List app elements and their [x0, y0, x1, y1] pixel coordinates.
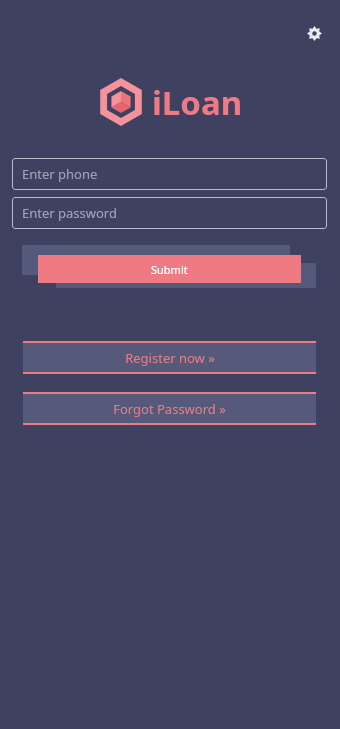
staticText: Forgot Password »: [113, 400, 226, 418]
button[interactable]: Register now »: [23, 341, 316, 374]
button[interactable]: Enter phone: [12, 158, 327, 190]
staticText: iLoan: [152, 80, 243, 125]
button[interactable]: Forgot Password »: [23, 392, 316, 425]
button[interactable]: Submit: [38, 255, 301, 283]
button[interactable]: Settings: [302, 21, 326, 45]
staticText: Enter password: [22, 204, 117, 222]
staticText: Submit: [151, 262, 188, 277]
staticText: Enter phone: [22, 165, 98, 183]
button[interactable]: Enter password: [12, 197, 327, 229]
staticText: Register now »: [125, 349, 215, 367]
